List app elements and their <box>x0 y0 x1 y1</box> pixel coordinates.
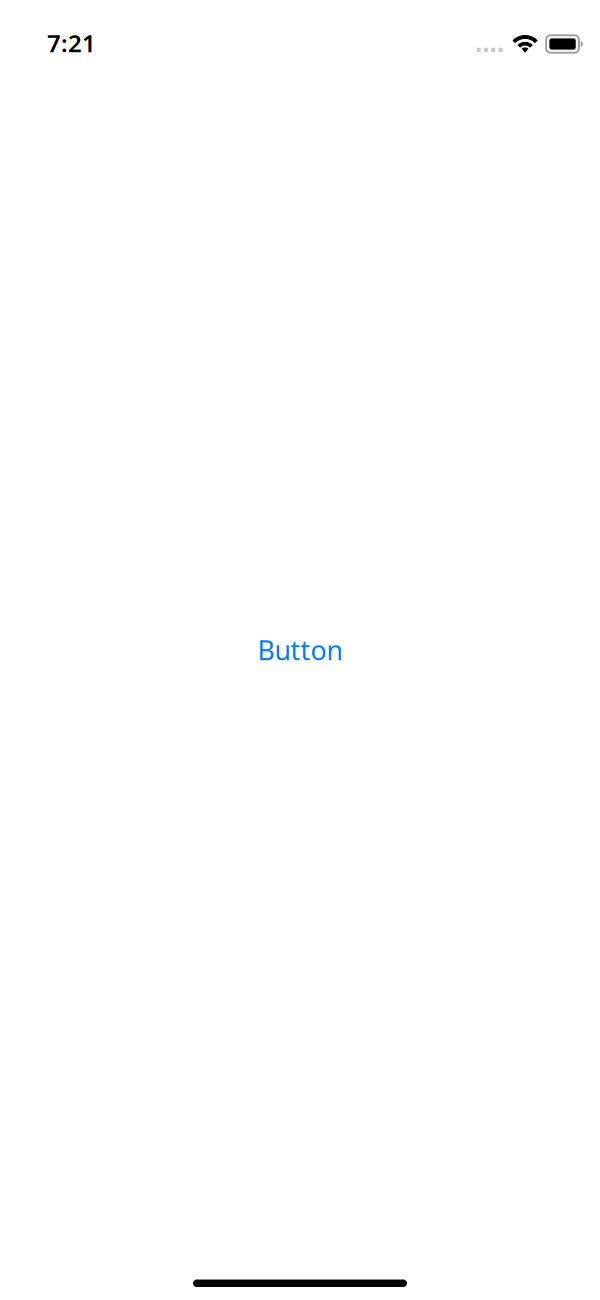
button[interactable]: Button <box>250 625 350 675</box>
staticText: Button <box>257 632 342 668</box>
staticText: 7:21 <box>47 27 96 59</box>
